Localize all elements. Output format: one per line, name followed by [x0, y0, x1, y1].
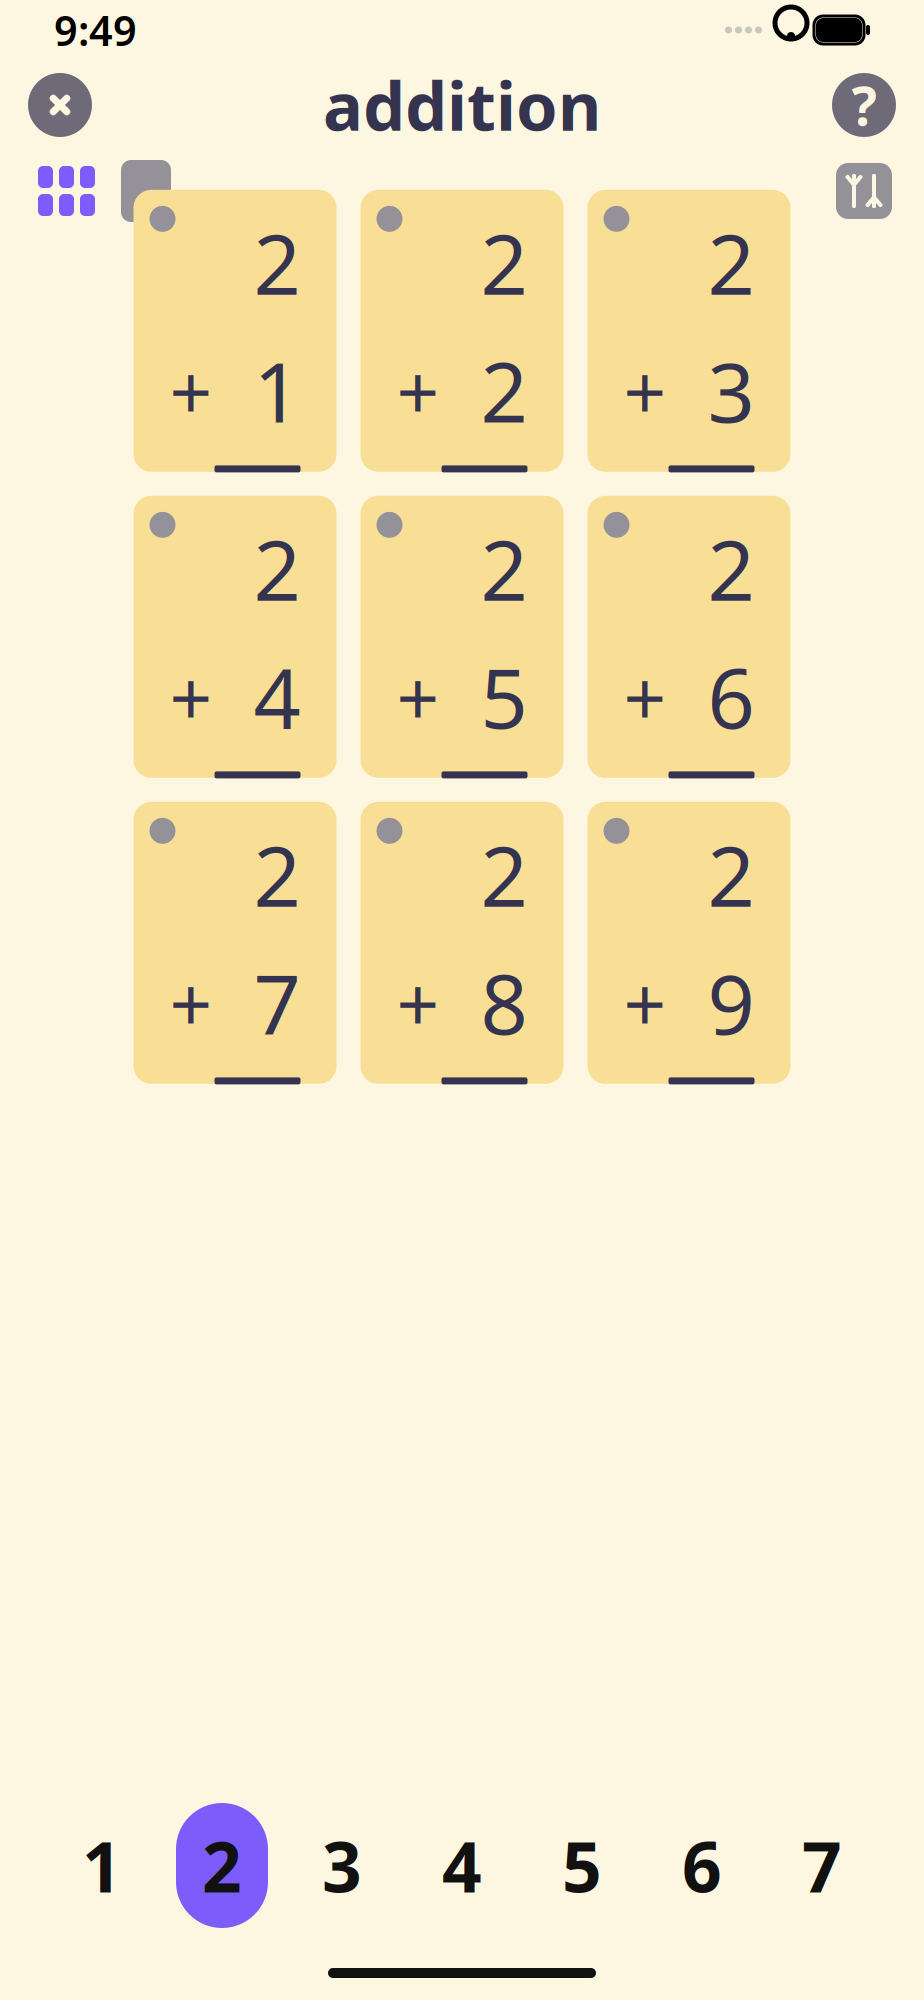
button[interactable]: 1	[56, 1803, 148, 1928]
staticText: 2	[253, 514, 300, 624]
staticText: 6	[682, 1819, 722, 1912]
button[interactable]: 2	[360, 250, 563, 532]
staticText: 9:49	[54, 3, 137, 57]
button[interactable]: Close	[28, 73, 92, 137]
staticText: +	[623, 647, 666, 746]
staticText: 2	[480, 208, 527, 318]
button[interactable]: 2	[587, 862, 790, 1144]
staticText: 5	[707, 482, 754, 592]
staticText: 2	[480, 514, 527, 624]
button[interactable]: 2	[133, 862, 336, 1144]
staticText: +	[396, 341, 439, 440]
staticText: 4	[480, 482, 527, 592]
staticText: 8	[480, 948, 527, 1057]
button[interactable]: 2	[587, 556, 790, 838]
staticText: 7	[253, 948, 300, 1057]
button[interactable]: 7	[776, 1803, 868, 1928]
button[interactable]: 6	[656, 1803, 748, 1928]
button[interactable]: 2	[360, 556, 563, 838]
staticText: 3	[707, 336, 754, 445]
button[interactable]: 2	[133, 556, 336, 838]
staticText: +	[169, 647, 212, 746]
staticText: 2	[253, 208, 300, 318]
staticText: 3	[253, 482, 300, 592]
staticText: 2	[707, 514, 754, 624]
staticText: 3	[322, 1819, 362, 1912]
staticText: 2	[707, 208, 754, 318]
staticText: addition	[323, 61, 601, 149]
staticText: 4	[442, 1819, 482, 1912]
button[interactable]: 2	[176, 1803, 268, 1928]
staticText: 5	[480, 642, 527, 751]
button[interactable]: 2	[587, 250, 790, 532]
staticText: 6	[253, 788, 300, 898]
button[interactable]: 2	[360, 862, 563, 1144]
staticText: +	[623, 953, 666, 1052]
staticText: 4	[253, 642, 300, 751]
staticText: 1	[253, 336, 300, 445]
button[interactable]: 2	[133, 250, 336, 532]
staticText: +	[169, 953, 212, 1052]
staticText: 2	[707, 820, 754, 930]
button[interactable]: Single card view	[119, 160, 173, 222]
staticText: 7	[802, 1819, 842, 1912]
button[interactable]: 3	[296, 1803, 388, 1928]
button[interactable]: 4	[416, 1803, 508, 1928]
staticText: 5	[562, 1819, 602, 1912]
button[interactable]: Grid view	[32, 160, 101, 222]
staticText: 1	[82, 1819, 122, 1912]
staticText: 2	[480, 820, 527, 930]
staticText: 2	[480, 336, 527, 445]
button[interactable]: Help	[832, 70, 896, 140]
button[interactable]: Sort	[836, 163, 892, 219]
staticText: ?	[851, 70, 876, 140]
staticText: +	[396, 953, 439, 1052]
staticText: 2	[253, 820, 300, 930]
staticText: 6	[707, 642, 754, 751]
staticText: 9	[707, 948, 754, 1057]
staticText	[506, 788, 527, 898]
staticText: +	[169, 341, 212, 440]
staticText: 2	[202, 1819, 242, 1912]
staticText: +	[396, 647, 439, 746]
staticText: +	[623, 341, 666, 440]
button[interactable]: 5	[536, 1803, 628, 1928]
staticText	[733, 788, 754, 898]
